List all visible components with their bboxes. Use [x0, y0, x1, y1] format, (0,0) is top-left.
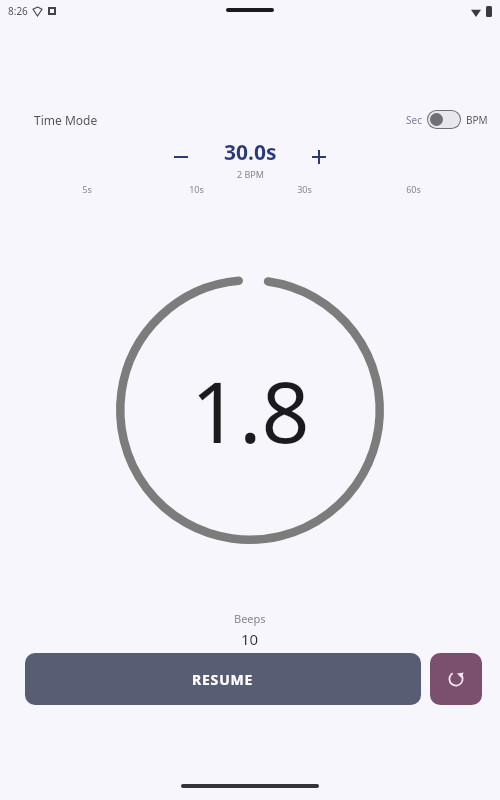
button[interactable]: Reset — [430, 653, 482, 705]
button[interactable]: 30s — [283, 183, 325, 195]
staticText: 8:26 — [8, 4, 28, 18]
button[interactable]: RESUME — [25, 653, 421, 705]
staticText: 10s — [189, 183, 204, 195]
staticText: 1.8 — [191, 353, 310, 467]
staticText: 10 — [241, 629, 259, 649]
staticText: 60s — [406, 183, 421, 195]
button[interactable]: 60s — [392, 183, 434, 195]
button[interactable]: 5s — [66, 183, 108, 195]
staticText: Sec — [406, 113, 422, 127]
staticText: Time Mode — [34, 112, 98, 128]
staticText: RESUME — [192, 670, 254, 689]
staticText: 5s — [82, 183, 92, 195]
staticText: 30.0s — [224, 138, 277, 167]
staticText: BPM — [466, 113, 488, 127]
button[interactable]: Increase — [304, 142, 334, 172]
button[interactable]: Decrease — [166, 142, 196, 172]
button[interactable]: 10s — [175, 183, 217, 195]
staticText: Beeps — [234, 611, 266, 626]
button[interactable]: Sec — [406, 110, 488, 129]
staticText: 2 BPM — [237, 168, 264, 180]
staticText: 30s — [297, 183, 312, 195]
